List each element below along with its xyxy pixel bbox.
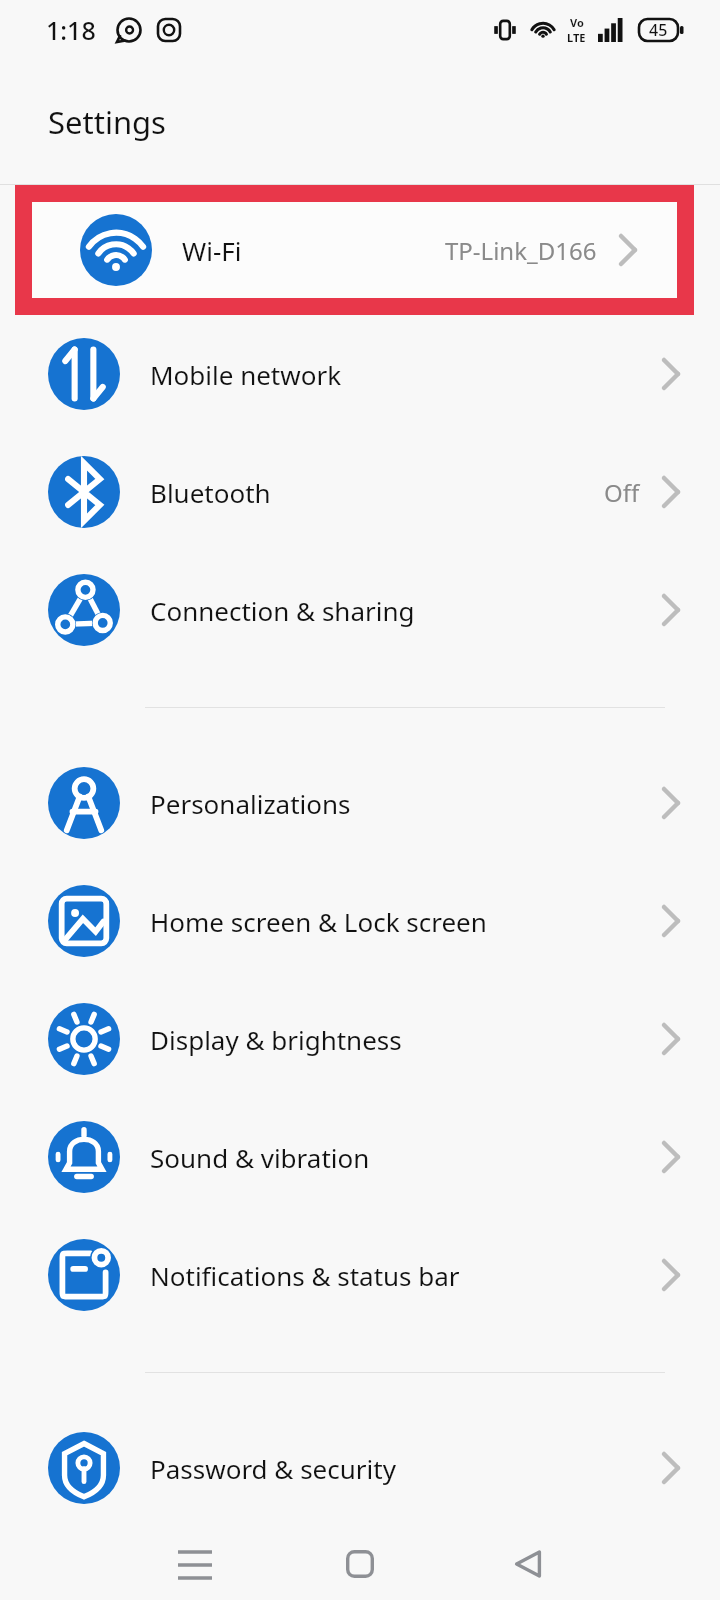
button[interactable]: Recent apps xyxy=(155,1527,235,1600)
staticText: Password & security xyxy=(150,1451,396,1486)
staticText: Notifications & status bar xyxy=(150,1258,460,1293)
staticText: LTE xyxy=(567,30,586,45)
staticText: Connection & sharing xyxy=(150,593,415,628)
staticText: Wi-Fi xyxy=(182,233,242,268)
button[interactable]: Mobile network xyxy=(0,315,720,433)
button[interactable]: Bluetooth xyxy=(0,433,720,551)
staticText: Personalizations xyxy=(150,786,351,821)
staticText: Display & brightness xyxy=(150,1022,402,1057)
button[interactable]: Password & security xyxy=(0,1409,720,1527)
button[interactable]: Home screen & Lock screen xyxy=(0,862,720,980)
button[interactable]: Connection & sharing xyxy=(0,551,720,669)
button[interactable]: Display & brightness xyxy=(0,980,720,1098)
staticText: Bluetooth xyxy=(150,475,271,510)
button[interactable]: Back xyxy=(488,1527,568,1600)
staticText: Sound & vibration xyxy=(150,1140,370,1175)
staticText: Off xyxy=(604,476,640,509)
staticText: 1:18 xyxy=(46,13,96,47)
staticText: 45 xyxy=(649,19,668,41)
button[interactable]: Wi-Fi xyxy=(32,202,677,298)
button[interactable]: Personalizations xyxy=(0,744,720,862)
staticText: Settings xyxy=(48,101,166,143)
staticText: TP-Link_D166 xyxy=(445,234,597,267)
button[interactable]: Sound & vibration xyxy=(0,1098,720,1216)
staticText: Mobile network xyxy=(150,357,342,392)
button[interactable]: Home xyxy=(320,1527,400,1600)
staticText: Home screen & Lock screen xyxy=(150,904,487,939)
button[interactable]: Notifications & status bar xyxy=(0,1216,720,1334)
staticText: Vo xyxy=(570,15,584,30)
